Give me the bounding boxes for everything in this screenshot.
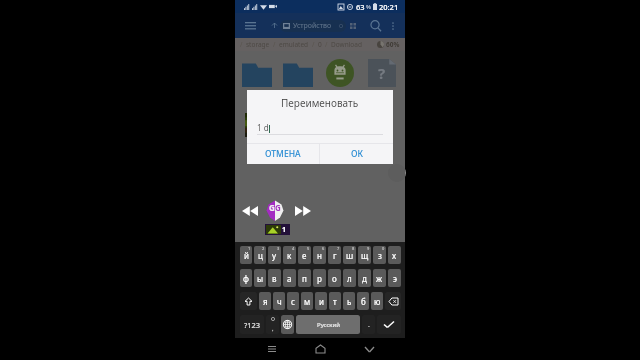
button[interactable]: ?123 <box>240 315 264 334</box>
button[interactable]: 1 d <box>237 87 278 137</box>
button[interactable]: Rewind <box>242 206 258 216</box>
staticText: х <box>392 250 397 261</box>
button[interactable] <box>319 51 361 87</box>
staticText: 2 <box>262 246 265 251</box>
button[interactable]: ОК <box>320 144 393 164</box>
staticText: . <box>368 320 370 330</box>
staticText: 20:21 <box>379 2 399 12</box>
button[interactable]: Fast forward <box>295 206 311 216</box>
staticText: к <box>287 250 292 261</box>
button[interactable] <box>277 51 319 87</box>
button[interactable]: л <box>343 269 356 287</box>
button[interactable]: д <box>358 269 371 287</box>
button[interactable]: ж <box>373 269 386 287</box>
staticText: / <box>325 40 328 49</box>
button[interactable]: ч <box>273 292 285 310</box>
staticText: ь <box>347 296 352 307</box>
staticText: 8 <box>352 246 355 251</box>
staticText: G <box>275 202 281 213</box>
button[interactable]: о <box>328 269 341 287</box>
button[interactable]: Search <box>367 17 385 35</box>
button[interactable]: я <box>259 292 271 310</box>
button[interactable]: м <box>301 292 313 310</box>
button[interactable]: э <box>388 269 401 287</box>
button[interactable]: з <box>373 246 386 264</box>
button[interactable]: Comma <box>266 315 279 334</box>
staticText: ж <box>376 273 383 284</box>
staticText: G <box>269 202 275 213</box>
button[interactable]: ф <box>240 269 252 287</box>
button[interactable]: е <box>298 246 311 264</box>
button[interactable]: Saved screenshot <box>266 225 289 234</box>
staticText: в <box>272 273 277 284</box>
staticText: , <box>272 325 274 333</box>
staticText: т <box>333 296 337 307</box>
staticText: % <box>366 3 371 11</box>
button[interactable]: ю <box>371 292 383 310</box>
staticText: ?123 <box>244 320 261 330</box>
staticText: р <box>317 273 322 284</box>
staticText: а <box>287 273 292 284</box>
staticText: у <box>272 250 277 261</box>
button[interactable]: ? <box>361 51 403 87</box>
staticText: 1 <box>282 225 287 234</box>
button[interactable]: Home <box>308 338 332 360</box>
staticText: emulated <box>279 40 309 49</box>
button[interactable]: Устройство <box>280 20 346 32</box>
staticText: / <box>273 40 276 49</box>
staticText: 4 <box>292 246 295 251</box>
button[interactable]: Change language <box>281 315 294 334</box>
staticText: 6 <box>322 246 325 251</box>
staticText: 0 <box>318 40 322 49</box>
staticText: ОК <box>351 148 363 160</box>
staticText: г <box>333 250 337 261</box>
staticText: ? <box>378 63 386 83</box>
staticText: д <box>362 273 367 284</box>
button[interactable]: ц <box>254 246 266 264</box>
button[interactable]: т <box>329 292 341 310</box>
staticText: л <box>347 273 352 284</box>
button[interactable]: у <box>268 246 281 264</box>
button[interactable]: ы <box>254 269 266 287</box>
button[interactable]: ОТМЕНА <box>247 144 319 164</box>
staticText: ОТМЕНА <box>265 148 301 160</box>
button[interactable]: Recents <box>260 338 284 360</box>
staticText: Устройство <box>293 21 332 31</box>
staticText: Русский <box>317 321 340 329</box>
button[interactable]: Backspace <box>385 292 401 310</box>
button[interactable]: Done <box>377 315 401 334</box>
staticText: / <box>240 40 243 49</box>
button[interactable]: Русский <box>296 315 360 334</box>
staticText: Download <box>331 40 362 49</box>
button[interactable]: н <box>313 246 326 264</box>
staticText: о <box>332 273 337 284</box>
button[interactable]: и <box>315 292 327 310</box>
staticText: е <box>302 250 307 261</box>
staticText: 7 <box>337 246 340 251</box>
staticText: 63 <box>356 2 365 12</box>
button[interactable]: щ <box>358 246 371 264</box>
button[interactable]: ь <box>343 292 355 310</box>
button[interactable]: х <box>388 246 401 264</box>
button[interactable]: г <box>328 246 341 264</box>
button[interactable]: й <box>240 246 252 264</box>
button[interactable]: ш <box>343 246 356 264</box>
button[interactable]: а <box>283 269 296 287</box>
button[interactable]: More options <box>386 19 400 33</box>
button[interactable]: Period <box>362 315 375 334</box>
button[interactable]: Menu <box>241 17 259 35</box>
button[interactable]: в <box>268 269 281 287</box>
button[interactable]: р <box>313 269 326 287</box>
button[interactable]: GameGuardian <box>266 200 284 221</box>
button[interactable]: с <box>287 292 299 310</box>
button[interactable] <box>236 51 277 87</box>
button[interactable]: Close keyboard <box>357 338 381 360</box>
staticText: ш <box>346 250 354 261</box>
staticText: storage <box>246 40 270 49</box>
button[interactable]: б <box>357 292 369 310</box>
staticText: щ <box>361 250 369 261</box>
button[interactable]: п <box>298 269 311 287</box>
button[interactable]: к <box>283 246 296 264</box>
button[interactable]: Shift <box>240 292 257 310</box>
button[interactable]: Add <box>388 164 406 182</box>
